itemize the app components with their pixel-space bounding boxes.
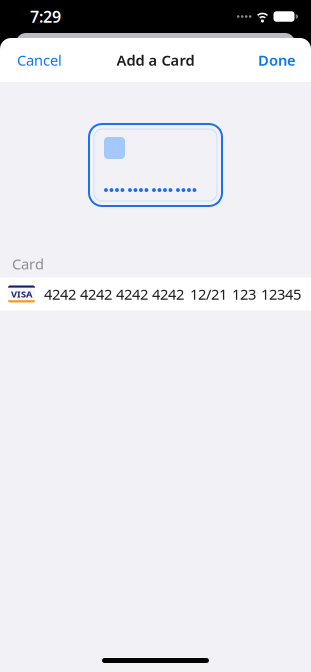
button[interactable]: 12/21	[190, 275, 227, 313]
staticText: Done	[258, 50, 296, 70]
button[interactable]: Card preview	[89, 124, 222, 206]
button[interactable]: Done	[243, 44, 311, 76]
button[interactable]: 123	[232, 275, 256, 313]
staticText: VISA	[11, 288, 32, 300]
button[interactable]: 4242 4242 4242 4242	[44, 275, 184, 313]
staticText: Card	[12, 254, 44, 273]
staticText: 123	[232, 284, 256, 304]
staticText: 12/21	[190, 284, 227, 304]
staticText: 7:29	[30, 6, 61, 27]
staticText: 12345	[261, 284, 301, 304]
staticText: 4242 4242 4242 4242	[44, 284, 184, 304]
staticText: Cancel	[17, 50, 62, 70]
button[interactable]: Card brand, Visa	[8, 277, 35, 310]
button[interactable]: Cancel	[0, 44, 79, 76]
staticText: Add a Card	[116, 50, 194, 70]
button[interactable]: 12345	[261, 275, 301, 313]
